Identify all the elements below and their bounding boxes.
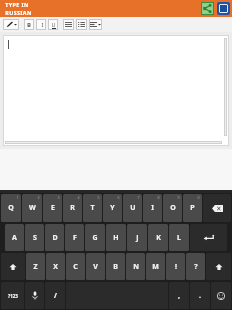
button[interactable]: Share [200,1,215,16]
staticText: . [199,291,201,301]
button[interactable]: P [183,194,202,222]
staticText: S [33,233,37,243]
staticText: 9 [177,195,180,200]
button[interactable]: X [46,253,65,280]
button[interactable]: F [65,224,84,251]
button[interactable]: ?123 [1,282,24,309]
button[interactable]: Bulleted list [63,19,74,30]
button[interactable]: U [123,194,142,222]
button[interactable]: Bold [24,19,34,30]
staticText: I [41,21,44,29]
staticText: 4 [77,195,80,200]
staticText: C [73,262,78,272]
staticText: P [190,203,195,213]
staticText: Q [8,203,14,213]
button[interactable]: K [148,224,168,251]
button[interactable]: Y [103,194,122,222]
button[interactable]: Shift [206,253,231,280]
button[interactable]: Emoji [211,282,231,309]
button[interactable]: L [169,224,189,251]
staticText: 8 [157,195,160,200]
staticText: A [12,233,17,243]
button[interactable]: ? [186,253,205,280]
staticText: 0 [197,195,200,200]
staticText: U [51,21,56,28]
staticText: V [93,262,98,272]
button[interactable]: S [25,224,44,251]
staticText: ! [175,262,177,272]
button[interactable]: B [106,253,125,280]
staticText: E [51,203,55,213]
button[interactable]: / [45,282,65,309]
button[interactable]: Shift [1,253,25,280]
button[interactable]: Z [26,253,45,280]
button[interactable]: A [5,224,24,251]
button[interactable]: R [63,194,82,222]
staticText: M [152,262,159,272]
button[interactable]: Alignment [89,19,102,30]
staticText: G [92,233,98,243]
button[interactable]: Info [216,1,231,16]
staticText: / [54,291,57,301]
staticText: T [90,203,95,213]
staticText: X [53,262,58,272]
button[interactable]: T [83,194,102,222]
button[interactable]: C [66,253,85,280]
button[interactable]: , [169,282,189,309]
button[interactable]: W [22,194,42,222]
staticText: Y [110,203,115,213]
button[interactable]: . [190,282,210,309]
staticText: 5 [97,195,100,200]
staticText: 2 [37,195,40,200]
staticText: D [52,233,58,243]
staticText: R [70,203,75,213]
staticText: RUSSIAN [5,9,32,16]
staticText: 6 [117,195,120,200]
staticText: H [113,233,119,243]
button[interactable]: Enter [190,224,227,251]
button[interactable]: O [163,194,182,222]
staticText: Z [33,262,38,272]
button[interactable]: Text color [3,19,19,30]
staticText: O [170,203,176,213]
button[interactable]: Underline [48,19,58,30]
button[interactable]: Q [1,194,21,222]
staticText: K [156,233,161,243]
button[interactable]: D [45,224,64,251]
button[interactable]: Italic [36,19,46,30]
staticText: 3 [57,195,60,200]
button[interactable]: G [85,224,105,251]
staticText: , [178,291,180,301]
button[interactable]: Voice input [25,282,44,309]
button[interactable]: I [143,194,162,222]
staticText: TYPE IN [5,1,29,8]
button[interactable]: N [126,253,145,280]
button[interactable]: ! [166,253,185,280]
staticText: B [113,262,118,272]
staticText: 7 [137,195,140,200]
staticText: ?123 [8,293,18,299]
button[interactable]: Backspace [203,194,231,222]
button[interactable]: E [43,194,62,222]
button[interactable]: J [127,224,147,251]
staticText: N [133,262,139,272]
staticText: F [73,233,77,243]
button[interactable]: H [106,224,126,251]
button[interactable]: M [146,253,165,280]
staticText: I [151,203,154,213]
button[interactable]: V [86,253,105,280]
staticText: U [130,203,136,213]
staticText: J [136,233,139,243]
staticText: ? [194,262,198,272]
staticText: L [177,233,181,243]
staticText: W [29,203,36,213]
button[interactable]: Numbered list [76,19,87,30]
staticText: B [27,21,31,29]
staticText: 1 [16,195,19,200]
